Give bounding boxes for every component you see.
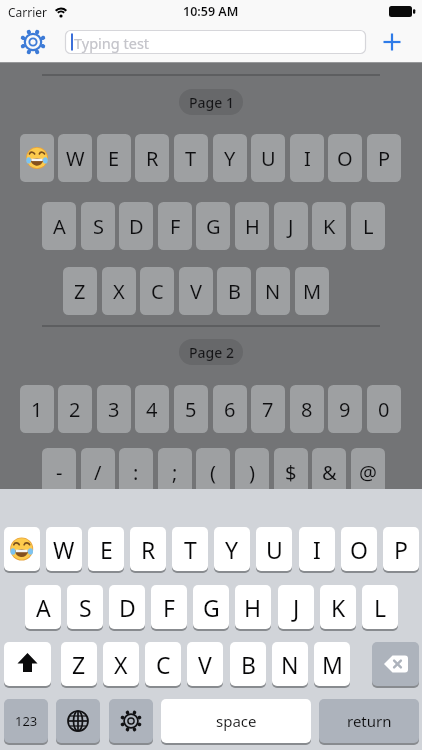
button[interactable]: E bbox=[97, 134, 131, 182]
button[interactable]: D bbox=[119, 202, 153, 250]
button[interactable]: T bbox=[172, 527, 208, 571]
button[interactable]: & bbox=[312, 448, 346, 496]
button[interactable]: 2 bbox=[58, 385, 92, 433]
button[interactable]: - bbox=[42, 448, 76, 496]
button[interactable]: @ bbox=[351, 448, 385, 496]
staticText: W bbox=[66, 145, 85, 172]
button[interactable]: K bbox=[320, 585, 356, 629]
button[interactable] bbox=[18, 28, 48, 58]
button[interactable]: H bbox=[235, 202, 269, 250]
button[interactable] bbox=[372, 642, 419, 686]
button[interactable]: V bbox=[179, 267, 213, 315]
staticText: J bbox=[293, 592, 300, 623]
button[interactable] bbox=[20, 134, 54, 182]
button[interactable]: W bbox=[58, 134, 92, 182]
button[interactable]: E bbox=[88, 527, 124, 571]
staticText: Carrier bbox=[8, 4, 48, 20]
button[interactable]: B bbox=[230, 642, 266, 686]
button[interactable]: L bbox=[351, 202, 385, 250]
button[interactable] bbox=[109, 699, 153, 743]
button[interactable]: G bbox=[196, 202, 230, 250]
staticText: 9 bbox=[339, 396, 351, 423]
staticText: K bbox=[323, 213, 336, 240]
button[interactable]: X bbox=[102, 267, 136, 315]
button[interactable]: S bbox=[81, 202, 115, 250]
button[interactable]: Z bbox=[61, 642, 97, 686]
button[interactable]: D bbox=[109, 585, 145, 629]
button[interactable]: S bbox=[67, 585, 103, 629]
button[interactable]: W bbox=[46, 527, 82, 571]
button[interactable] bbox=[56, 699, 100, 743]
button[interactable]: R bbox=[130, 527, 166, 571]
staticText: 8 bbox=[301, 396, 313, 423]
button[interactable]: N bbox=[272, 642, 308, 686]
button[interactable]: 4 bbox=[135, 385, 169, 433]
button[interactable]: 7 bbox=[251, 385, 285, 433]
button[interactable]: I bbox=[299, 527, 335, 571]
staticText: 7 bbox=[262, 396, 274, 423]
button[interactable]: P bbox=[367, 134, 401, 182]
button[interactable]: G bbox=[193, 585, 229, 629]
button[interactable]: O bbox=[341, 527, 377, 571]
button[interactable]: U bbox=[251, 134, 285, 182]
button[interactable]: J bbox=[278, 585, 314, 629]
staticText: F bbox=[170, 213, 181, 240]
staticText: 0 bbox=[378, 396, 390, 423]
button[interactable]: 9 bbox=[328, 385, 362, 433]
button[interactable]: ; bbox=[158, 448, 192, 496]
button[interactable]: V bbox=[187, 642, 223, 686]
button[interactable]: A bbox=[42, 202, 76, 250]
button[interactable]: C bbox=[145, 642, 181, 686]
button[interactable]: M bbox=[314, 642, 350, 686]
button[interactable] bbox=[65, 30, 366, 54]
button[interactable]: 123 bbox=[4, 699, 48, 743]
button[interactable]: 5 bbox=[174, 385, 208, 433]
button[interactable] bbox=[4, 642, 51, 686]
button[interactable]: A bbox=[25, 585, 61, 629]
button[interactable]: 6 bbox=[213, 385, 247, 433]
button[interactable]: Z bbox=[63, 267, 97, 315]
button[interactable]: F bbox=[158, 202, 192, 250]
button[interactable]: : bbox=[119, 448, 153, 496]
staticText: 10:59 AM bbox=[183, 3, 239, 20]
button[interactable]: O bbox=[328, 134, 362, 182]
button[interactable]: T bbox=[174, 134, 208, 182]
button[interactable] bbox=[379, 29, 405, 55]
staticText: 3 bbox=[108, 396, 120, 423]
button[interactable] bbox=[4, 527, 40, 571]
button[interactable]: P bbox=[383, 527, 419, 571]
staticText: S bbox=[93, 213, 104, 240]
button[interactable]: / bbox=[81, 448, 115, 496]
staticText: H bbox=[244, 592, 262, 623]
button[interactable]: space bbox=[161, 699, 311, 743]
staticText: B bbox=[241, 649, 256, 680]
button[interactable]: 1 bbox=[20, 385, 54, 433]
button[interactable]: B bbox=[217, 267, 251, 315]
button[interactable]: return bbox=[319, 699, 419, 743]
button[interactable]: N bbox=[256, 267, 290, 315]
button[interactable]: 8 bbox=[290, 385, 324, 433]
button[interactable]: K bbox=[312, 202, 346, 250]
button[interactable]: R bbox=[135, 134, 169, 182]
staticText: G bbox=[203, 592, 220, 623]
button[interactable]: 0 bbox=[367, 385, 401, 433]
button[interactable]: Y bbox=[213, 134, 247, 182]
button[interactable]: J bbox=[274, 202, 308, 250]
button[interactable]: H bbox=[235, 585, 271, 629]
staticText: X bbox=[114, 649, 128, 680]
staticText: I bbox=[304, 145, 311, 172]
button[interactable]: I bbox=[290, 134, 324, 182]
button[interactable]: $ bbox=[274, 448, 308, 496]
button[interactable]: ) bbox=[235, 448, 269, 496]
button[interactable]: 3 bbox=[97, 385, 131, 433]
button[interactable]: L bbox=[362, 585, 398, 629]
button[interactable]: Y bbox=[214, 527, 250, 571]
button[interactable]: F bbox=[151, 585, 187, 629]
button[interactable]: C bbox=[140, 267, 174, 315]
button[interactable]: M bbox=[295, 267, 329, 315]
button[interactable]: U bbox=[256, 527, 292, 571]
button[interactable]: ( bbox=[196, 448, 230, 496]
staticText: H bbox=[245, 213, 260, 240]
staticText: 4 bbox=[146, 396, 158, 423]
button[interactable]: X bbox=[103, 642, 139, 686]
